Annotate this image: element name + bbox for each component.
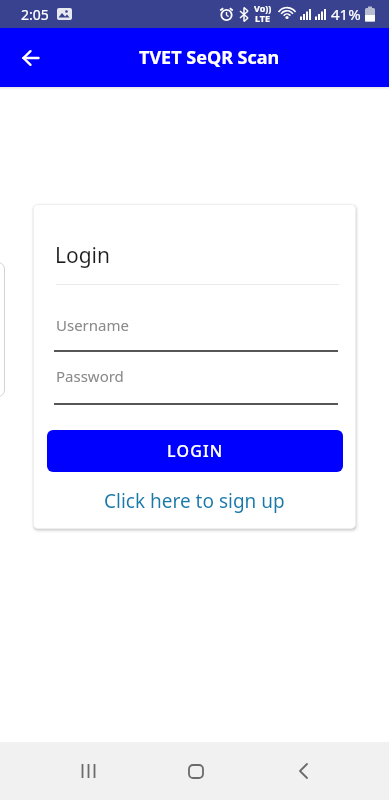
staticText: 2:05 [21,5,49,24]
button[interactable]: LOGIN [47,430,343,472]
staticText: Login [55,241,111,270]
staticText: Password [56,366,124,386]
button[interactable] [172,742,220,800]
staticText: Vo)) [254,2,272,14]
staticText: TVET SeQR Scan [139,45,280,70]
staticText: 41% [331,4,361,24]
button[interactable]: Click here to sign up [33,488,356,514]
staticText: Click here to sign up [104,488,285,514]
staticText: Username [56,315,129,335]
button[interactable] [14,41,48,75]
staticText: LTE [255,12,271,24]
staticText: LOGIN [167,440,224,462]
button[interactable] [65,742,113,800]
button[interactable] [279,742,327,800]
